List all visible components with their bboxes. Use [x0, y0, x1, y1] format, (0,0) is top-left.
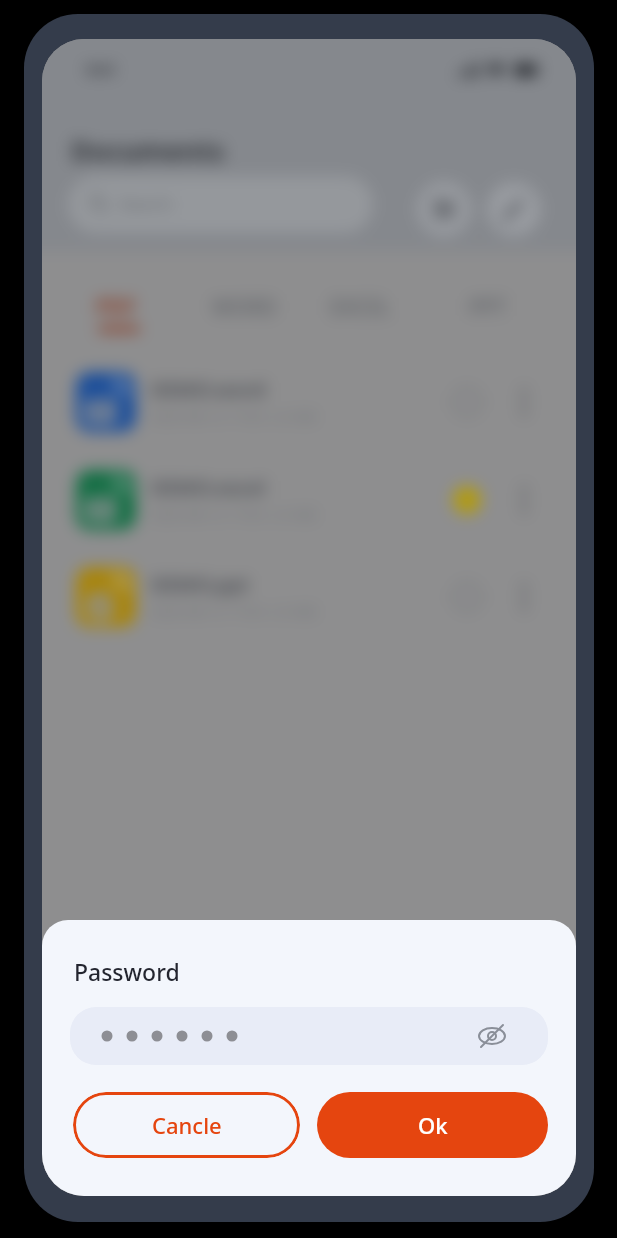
- staticText: DEMO.excel: [151, 474, 266, 501]
- staticText: Password: [74, 956, 180, 987]
- button[interactable]: [452, 485, 482, 515]
- button[interactable]: [487, 182, 541, 236]
- staticText: DEMO.word: [151, 376, 266, 403]
- button[interactable]: Ok: [317, 1092, 548, 1158]
- button[interactable]: Cancle: [73, 1092, 300, 1158]
- staticText: Documents: [71, 132, 225, 169]
- staticText: PDF: [96, 292, 136, 321]
- staticText: Ok: [418, 1110, 448, 1140]
- staticText: Cancle: [152, 1110, 222, 1140]
- button[interactable]: PPT: [459, 283, 523, 327]
- button[interactable]: PDF: [86, 283, 150, 335]
- button[interactable]: [417, 182, 471, 236]
- button[interactable]: EXCEL: [320, 283, 408, 327]
- button[interactable]: [70, 1007, 548, 1065]
- staticText: WORD: [212, 293, 277, 322]
- button[interactable]: [62, 364, 442, 440]
- staticText: DEMO.ppt: [151, 571, 249, 598]
- button[interactable]: [62, 559, 442, 635]
- button[interactable]: WORD: [202, 283, 290, 327]
- button[interactable]: [62, 462, 442, 538]
- button[interactable]: [470, 1014, 514, 1058]
